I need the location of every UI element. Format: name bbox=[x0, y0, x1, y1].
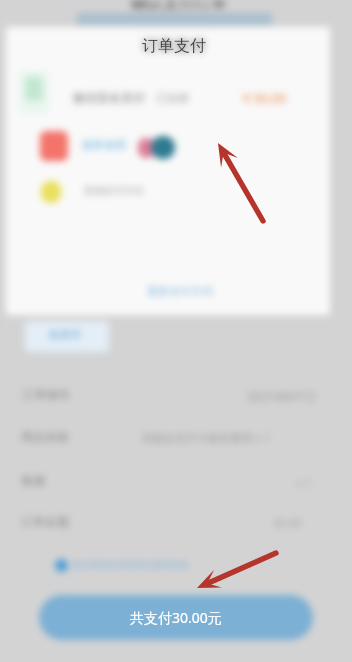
staticText: 商品名称 bbox=[21, 429, 69, 444]
staticText: 订单编号 bbox=[22, 387, 70, 402]
staticText: 微信安全支付 bbox=[73, 90, 145, 105]
staticText: 共支付30.00元 bbox=[130, 608, 222, 627]
staticText: 推荐使用 bbox=[82, 138, 126, 152]
staticText: 确认支付订单 bbox=[131, 0, 227, 13]
staticText: 高级会员月卡服务费用 x 1 bbox=[142, 430, 270, 445]
staticText: 订单金额 bbox=[21, 514, 69, 529]
staticText: 订单支付 bbox=[142, 36, 206, 56]
staticText: 已加密 bbox=[156, 91, 189, 105]
staticText: 2021060712 bbox=[247, 388, 316, 404]
staticText: 我已阅读并同意相关服务协议 bbox=[72, 559, 189, 570]
staticText: 去支付 bbox=[48, 327, 81, 341]
staticText: 其他支付方式 bbox=[84, 184, 144, 197]
button[interactable]: 共支付30.00元 bbox=[39, 595, 313, 640]
staticText: 订单支付 bbox=[142, 36, 206, 56]
staticText: ￥30.00 bbox=[240, 89, 287, 107]
staticText: 数量 bbox=[22, 473, 46, 488]
staticText: 更多支付方式 bbox=[147, 284, 213, 298]
